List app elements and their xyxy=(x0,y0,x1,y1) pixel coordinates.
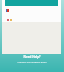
staticText: Contact our support team xyxy=(17,60,47,63)
staticText: Need Help? xyxy=(23,55,41,59)
